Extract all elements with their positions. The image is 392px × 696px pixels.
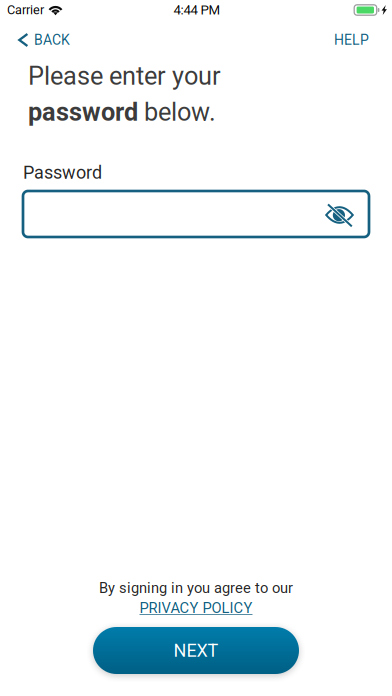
staticText: 4:44 PM xyxy=(173,2,220,18)
staticText: PRIVACY POLICY xyxy=(139,599,252,617)
button[interactable]: BACK xyxy=(0,26,82,54)
staticText: password below. xyxy=(28,97,216,126)
staticText: Carrier xyxy=(7,3,44,17)
staticText: HELP xyxy=(334,32,369,48)
staticText: NEXT xyxy=(173,640,218,661)
staticText: Please enter your xyxy=(28,61,221,91)
button[interactable]: Show password xyxy=(325,191,369,237)
staticText: By signing in you agree to our xyxy=(99,579,293,597)
button[interactable]: NEXT xyxy=(93,627,299,674)
staticText: BACK xyxy=(34,32,70,48)
staticText: Password xyxy=(23,162,102,183)
button[interactable]: HELP xyxy=(320,26,392,54)
button[interactable]: PRIVACY POLICY xyxy=(139,598,252,618)
